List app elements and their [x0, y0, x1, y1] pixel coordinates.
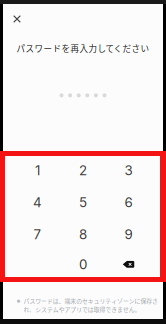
button[interactable]: 8 [60, 218, 106, 250]
button[interactable]: 6 [106, 186, 151, 218]
button[interactable]: 1 [15, 154, 60, 186]
staticText: 3 [124, 162, 132, 178]
button[interactable]: 3 [106, 154, 151, 186]
button[interactable]: 2 [60, 154, 106, 186]
button[interactable]: 9 [106, 218, 151, 250]
staticText: 0 [79, 256, 87, 272]
staticText: 5 [79, 194, 87, 210]
staticText: 8 [79, 226, 87, 242]
staticText: パスワードを再入力してください [16, 42, 149, 54]
staticText: 1 [35, 162, 40, 178]
staticText: 4 [33, 194, 42, 210]
staticText: パスワードは、端末のセキュリティゾーンに保存され、システムやアプリでは取得できま… [24, 296, 158, 313]
staticText: 6 [124, 194, 132, 210]
button[interactable]: 0 [60, 250, 106, 278]
button[interactable]: Close [7, 9, 27, 29]
button[interactable]: Delete [106, 250, 151, 278]
staticText: 2 [79, 162, 87, 178]
staticText: 9 [124, 226, 132, 242]
button[interactable]: 7 [15, 218, 60, 250]
button[interactable]: 5 [60, 186, 106, 218]
button[interactable]: 4 [15, 186, 60, 218]
staticText: 7 [33, 226, 41, 242]
